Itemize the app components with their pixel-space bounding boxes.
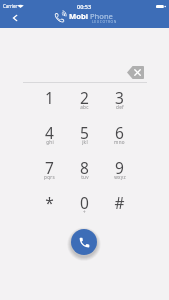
button[interactable]: Back <box>6 9 23 26</box>
staticText: Carrier <box>3 3 18 9</box>
staticText: 6 <box>115 122 124 143</box>
staticText: wxyz <box>114 174 126 180</box>
staticText: LEUCOTRON <box>92 19 117 24</box>
button[interactable]: 9 <box>102 151 137 186</box>
staticText: Phone <box>90 11 113 21</box>
staticText: 9 <box>115 157 124 178</box>
staticText: Mobi <box>69 11 88 21</box>
button[interactable]: 4 <box>32 116 67 151</box>
staticText: pqrs <box>44 174 55 180</box>
button[interactable]: 3 <box>102 81 137 116</box>
staticText: jkl <box>82 139 88 145</box>
staticText: 8 <box>80 157 89 178</box>
staticText: mno <box>114 139 125 145</box>
staticText: abc <box>80 104 89 110</box>
button[interactable]: 7 <box>32 151 67 186</box>
staticText: + <box>83 209 86 215</box>
staticText: 5 <box>80 122 89 143</box>
button[interactable]: 6 <box>102 116 137 151</box>
staticText: 1 <box>45 87 54 108</box>
button[interactable]: Call <box>71 229 97 255</box>
button[interactable]: # <box>102 186 137 221</box>
staticText: 4 <box>45 122 54 143</box>
staticText: def <box>116 104 124 110</box>
staticText: 3 <box>115 87 124 108</box>
button[interactable]: 1 <box>32 81 67 116</box>
staticText: # <box>114 192 125 213</box>
staticText: 00:53 <box>77 3 92 10</box>
staticText: 0 <box>80 192 89 213</box>
staticText: 7 <box>45 157 54 178</box>
button[interactable]: 5 <box>67 116 102 151</box>
button[interactable]: Backspace <box>125 62 146 80</box>
staticText: 2 <box>80 87 89 108</box>
button[interactable]: 2 <box>67 81 102 116</box>
button[interactable]: 0 <box>67 186 102 221</box>
button[interactable]: * <box>32 186 67 221</box>
staticText: tuv <box>81 174 89 180</box>
staticText: ghi <box>46 139 54 145</box>
button[interactable]: 8 <box>67 151 102 186</box>
staticText: * <box>45 192 54 213</box>
